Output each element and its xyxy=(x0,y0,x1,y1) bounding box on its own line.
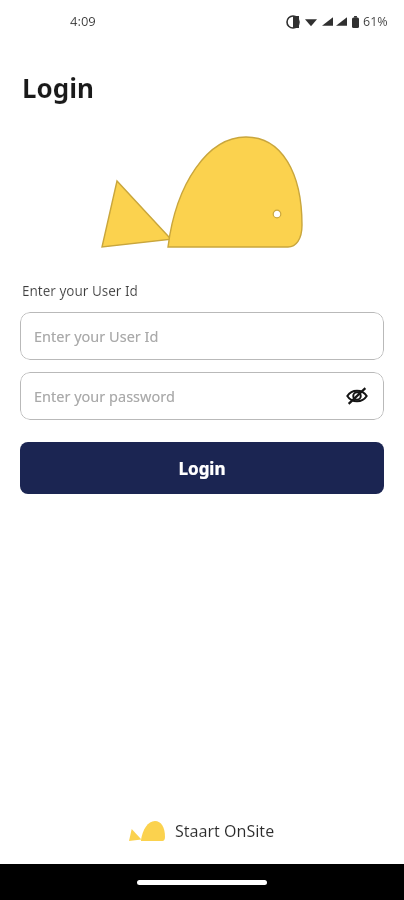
staticText: Login xyxy=(22,70,94,105)
button[interactable]: Enter your password xyxy=(20,372,384,420)
button[interactable]: Login xyxy=(20,442,384,494)
staticText: Enter your User Id xyxy=(34,326,159,346)
staticText: Staart OnSite xyxy=(175,820,275,842)
button[interactable]: Staart OnSite xyxy=(0,820,404,842)
staticText: Enter your password xyxy=(34,386,175,406)
staticText: Login xyxy=(178,457,226,480)
staticText: 61% xyxy=(363,13,388,30)
button[interactable]: Show password xyxy=(342,381,372,411)
staticText: Enter your User Id xyxy=(22,282,138,300)
button[interactable]: Enter your User Id xyxy=(20,312,384,360)
staticText: 4:09 xyxy=(70,12,96,30)
